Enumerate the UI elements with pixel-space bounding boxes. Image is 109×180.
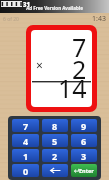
staticText: 2 [52, 150, 58, 162]
button[interactable]: Ad Free Version Available [0, 0, 109, 13]
staticText: 0 [23, 165, 29, 177]
staticText: × [36, 57, 43, 73]
staticText: 1:43 [92, 14, 106, 24]
button[interactable]: 4 [12, 134, 39, 147]
staticText: Enter [79, 167, 94, 174]
button[interactable]: 7 [26, 25, 97, 112]
button[interactable]: 9 [71, 119, 97, 132]
button[interactable]: Backspace [42, 164, 68, 177]
staticText: Ad Free Version Available [26, 5, 83, 11]
staticText: 6 of 20 [3, 16, 19, 23]
staticText: 7 [23, 120, 29, 132]
staticText: 1 [23, 150, 29, 162]
staticText: 8 [52, 120, 58, 132]
staticText: 6 [81, 135, 87, 147]
button[interactable]: 0 [12, 164, 39, 177]
button[interactable]: 1 [12, 149, 39, 162]
button[interactable]: 8 [42, 119, 68, 132]
staticText: 9 [81, 120, 87, 132]
button[interactable]: Enter [71, 164, 97, 177]
button[interactable]: 5 [42, 134, 68, 147]
button[interactable]: 3 [71, 149, 97, 162]
button[interactable]: 7 [12, 119, 39, 132]
staticText: 5 [52, 135, 58, 147]
staticText: 3 [81, 150, 87, 162]
staticText: 7 [72, 30, 87, 64]
button[interactable]: 6 [71, 134, 97, 147]
staticText: 2 [72, 52, 87, 86]
staticText: 4 [23, 135, 29, 147]
staticText: 14 [58, 71, 87, 105]
staticText: 31 [23, 1, 31, 7]
button[interactable]: 2 [42, 149, 68, 162]
